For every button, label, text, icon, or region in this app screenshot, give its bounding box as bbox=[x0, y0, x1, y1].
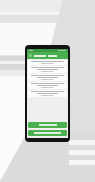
other: Navigation menu bbox=[29, 54, 32, 57]
button[interactable] bbox=[28, 66, 67, 73]
button[interactable] bbox=[28, 122, 67, 128]
button[interactable] bbox=[28, 82, 67, 89]
button[interactable] bbox=[28, 130, 67, 136]
button[interactable] bbox=[28, 90, 67, 97]
button[interactable]: Navigation menu bbox=[27, 52, 68, 59]
button[interactable] bbox=[28, 60, 67, 65]
button[interactable] bbox=[28, 74, 67, 81]
